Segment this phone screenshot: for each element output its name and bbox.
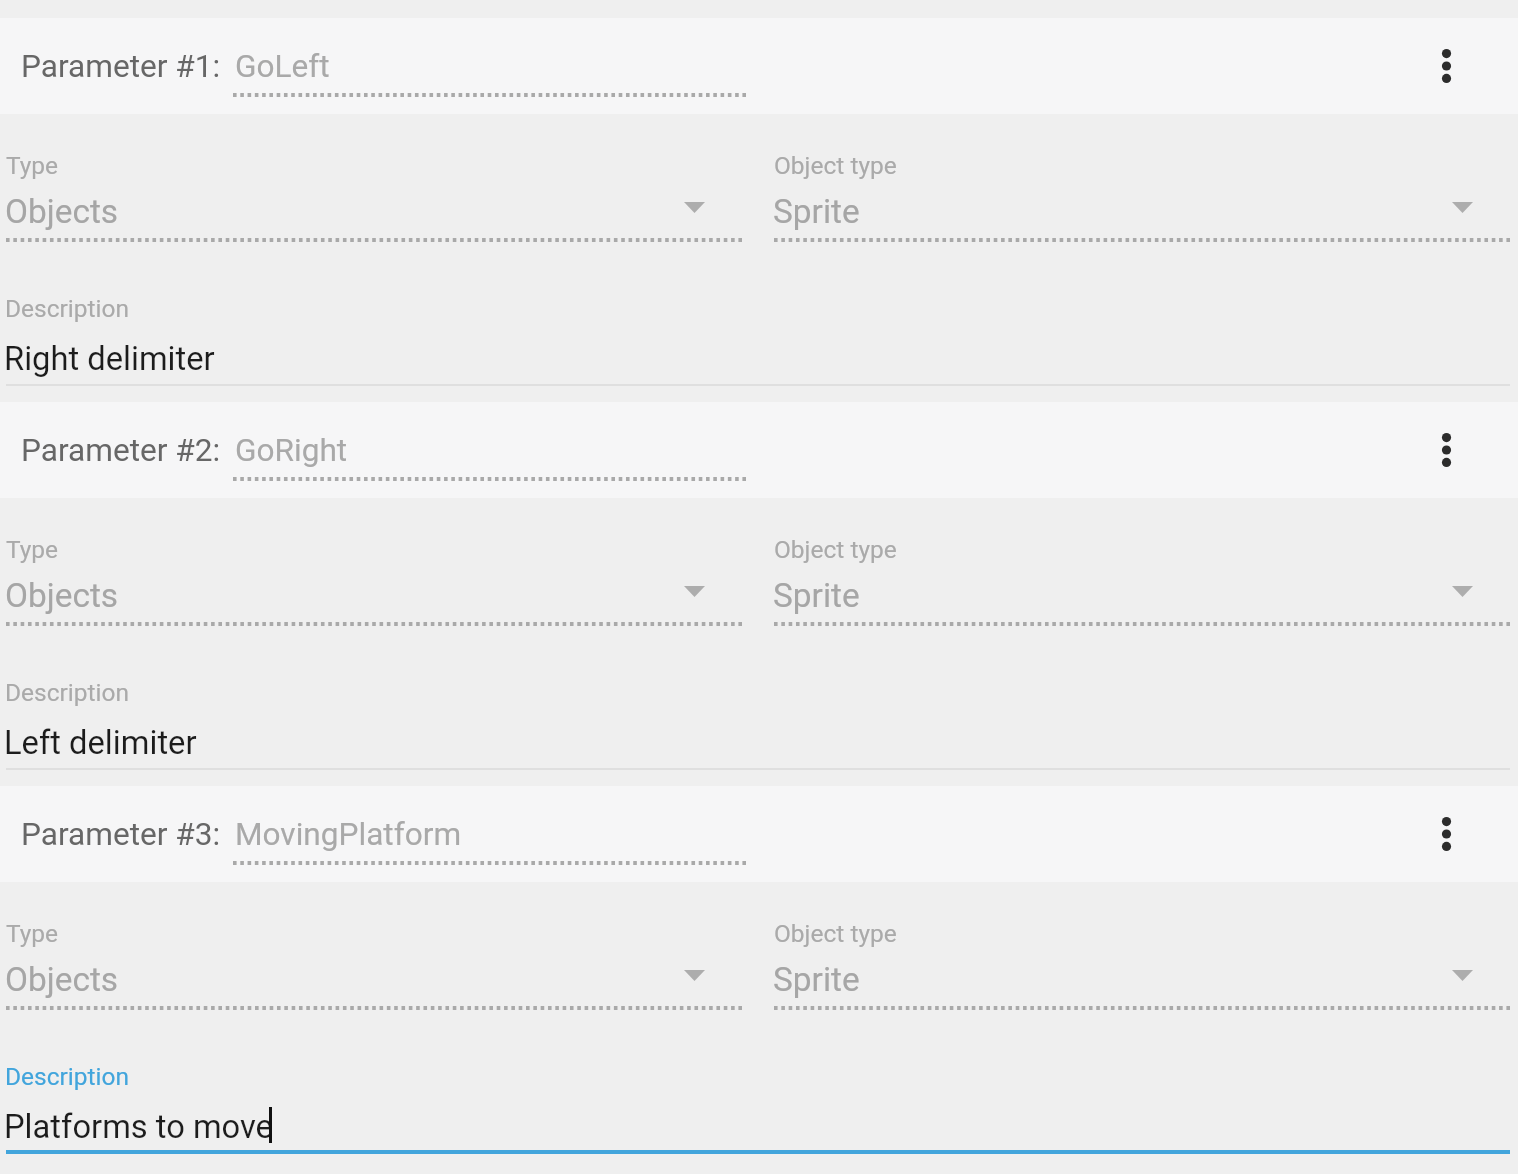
button[interactable]: Description [6,670,1510,772]
staticText: Parameter #3: [21,816,221,853]
staticText: Sprite [773,192,860,231]
staticText: GoLeft [235,48,330,85]
staticText: Objects [5,192,119,231]
button[interactable]: Object type [774,911,1510,1015]
staticText: Type [6,535,59,564]
button[interactable]: Parameter #1: [0,18,1518,114]
staticText: Type [6,151,59,180]
staticText: Parameter #1: [21,48,221,85]
staticText: Object type [774,535,897,564]
button[interactable]: Parameter #2: [0,402,1518,498]
button[interactable]: More options [1408,786,1484,882]
staticText: Type [6,919,59,948]
staticText: Description [5,678,130,707]
staticText: Object type [774,151,897,180]
button[interactable]: Type [6,911,742,1015]
staticText: Description [5,294,130,323]
staticText: Right delimiter [4,340,215,378]
staticText: Left delimiter [4,724,197,762]
staticText: Sprite [773,960,860,999]
button[interactable]: Parameter #3: [0,786,1518,882]
button[interactable]: More options [1408,18,1484,114]
staticText: Parameter #2: [21,432,221,469]
button[interactable]: More options [1408,402,1484,498]
staticText: Objects [5,576,119,615]
staticText: Platforms to move [4,1108,273,1146]
staticText: Sprite [773,576,860,615]
button[interactable]: Type [6,527,742,631]
staticText: Objects [5,960,119,999]
staticText: Object type [774,919,897,948]
staticText: Description [5,1062,130,1091]
button[interactable]: Description [6,1054,1510,1156]
staticText: MovingPlatform [235,816,462,853]
button[interactable]: Description [6,286,1510,388]
button[interactable]: Object type [774,527,1510,631]
button[interactable]: Type [6,143,742,247]
staticText: GoRight [235,432,348,469]
button[interactable]: Object type [774,143,1510,247]
